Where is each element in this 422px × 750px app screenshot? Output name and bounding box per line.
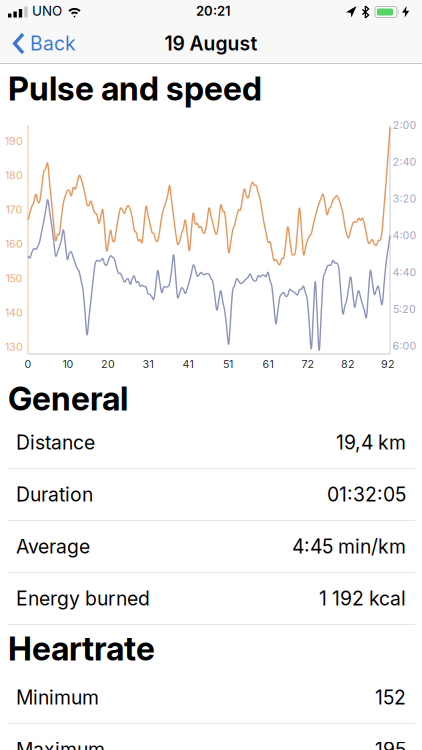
staticText: 41 xyxy=(182,357,193,370)
staticText: Average xyxy=(16,535,90,558)
staticText: 2:00 xyxy=(392,118,416,131)
staticText: General xyxy=(8,379,128,418)
staticText: 130 xyxy=(5,340,23,353)
staticText: 2:40 xyxy=(392,155,416,168)
staticText: 19,4 km xyxy=(336,431,406,454)
staticText: Back xyxy=(30,32,76,55)
staticText: Pulse and speed xyxy=(8,69,262,108)
staticText: 31 xyxy=(142,357,153,370)
staticText: 20:21 xyxy=(196,3,231,19)
staticText: 0 xyxy=(24,357,31,370)
staticText: 190 xyxy=(5,134,23,147)
staticText: 72 xyxy=(301,357,314,370)
staticText: 160 xyxy=(5,237,23,250)
staticText: Distance xyxy=(16,431,95,454)
staticText: 195 xyxy=(375,738,406,750)
staticText: 10 xyxy=(62,357,73,370)
button[interactable]: Back xyxy=(0,32,82,55)
staticText: 82 xyxy=(341,357,355,370)
staticText: 152 xyxy=(375,686,406,709)
staticText: Minimum xyxy=(16,686,99,709)
staticText: 4:45 min/km xyxy=(292,535,406,558)
staticText: 140 xyxy=(5,306,23,319)
staticText: UNO xyxy=(32,3,62,19)
staticText: Maximum xyxy=(16,738,105,750)
staticText: 20 xyxy=(101,357,115,370)
staticText: 4:40 xyxy=(392,266,416,279)
staticText: 1 192 kcal xyxy=(319,587,406,610)
staticText: 5:20 xyxy=(393,303,416,316)
staticText: 92 xyxy=(381,357,395,370)
staticText: 180 xyxy=(5,169,23,182)
staticText: 6:00 xyxy=(392,339,416,352)
staticText: 3:20 xyxy=(392,192,416,205)
staticText: Heartrate xyxy=(8,629,155,668)
staticText: 170 xyxy=(5,203,22,216)
staticText: 01:32:05 xyxy=(327,483,406,506)
staticText: 61 xyxy=(262,357,273,370)
staticText: Duration xyxy=(16,483,93,506)
staticText: Energy burned xyxy=(16,587,150,610)
staticText: 150 xyxy=(5,272,22,285)
staticText: 19 August xyxy=(164,32,257,55)
staticText: 4:00 xyxy=(392,229,416,242)
staticText: 51 xyxy=(223,357,233,370)
